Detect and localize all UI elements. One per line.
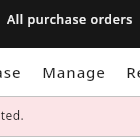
staticText: All purchase orders	[7, 11, 133, 28]
button[interactable]: created.	[0, 97, 140, 136]
staticText: created.	[0, 107, 25, 123]
button[interactable]: Related	[120, 48, 140, 96]
staticText: Related	[126, 62, 140, 82]
staticText: Purchase	[0, 62, 22, 82]
button[interactable]: All purchase orders	[0, 0, 140, 48]
button[interactable]: Manage	[38, 48, 110, 96]
button[interactable]: Purchase	[0, 48, 21, 96]
staticText: Manage	[42, 62, 106, 82]
